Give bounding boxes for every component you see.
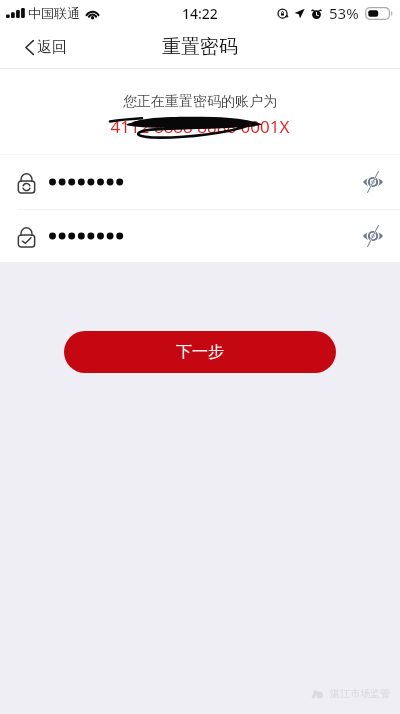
staticText: 4112 8888 8888 0001X (0, 115, 400, 138)
staticText: 返回 (37, 38, 67, 57)
staticText: 53% (329, 3, 359, 23)
staticText: 中国联通 (28, 5, 80, 21)
staticText: 湛江市场监管 (330, 687, 390, 700)
staticText: 您正在重置密码的账户为 (0, 93, 400, 111)
staticText: 14:22 (182, 4, 218, 23)
button[interactable]: Show password (354, 217, 392, 255)
button[interactable]: 返回 (21, 32, 71, 63)
button[interactable]: Show password (354, 163, 392, 201)
button[interactable]: 下一步 (64, 331, 336, 373)
staticText: 下一步 (176, 342, 224, 362)
staticText: 重置密码 (162, 35, 238, 59)
